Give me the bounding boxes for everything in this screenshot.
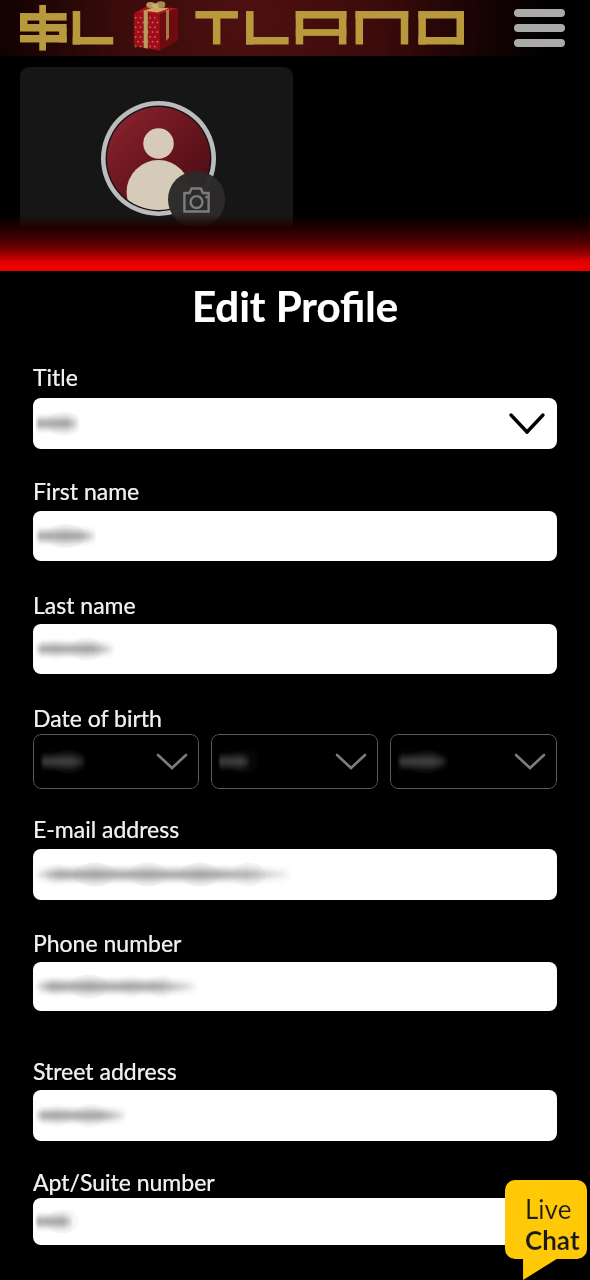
button[interactable]: First name (33, 511, 557, 561)
staticText: Live (525, 1193, 572, 1224)
staticText: Chat (525, 1224, 580, 1255)
staticText: E-mail address (33, 815, 180, 843)
button[interactable]: Change profile photo (168, 171, 225, 228)
button[interactable]: E-mail address (33, 849, 557, 900)
staticText: Date of birth (33, 704, 162, 732)
staticText: Title (33, 363, 78, 391)
staticText: Phone number (33, 929, 182, 957)
button[interactable]: Year of birth (390, 734, 557, 789)
button[interactable]: Live Chat (505, 1180, 587, 1280)
button[interactable]: Phone number (33, 962, 557, 1011)
staticText: First name (33, 477, 140, 505)
button[interactable]: Last name (33, 624, 557, 674)
staticText: Apt/Suite number (33, 1168, 215, 1196)
button[interactable]: Slotland (20, 8, 464, 48)
staticText: Last name (33, 591, 136, 619)
button[interactable]: Menu (514, 9, 565, 47)
button[interactable]: Title (33, 398, 557, 449)
staticText: Edit Profile (0, 281, 590, 331)
button[interactable]: Month of birth (211, 734, 378, 789)
button[interactable]: Apt/Suite number (33, 1198, 557, 1245)
button[interactable]: Street address (33, 1090, 557, 1141)
staticText: Street address (33, 1057, 177, 1085)
button[interactable]: Day of birth (33, 734, 199, 789)
